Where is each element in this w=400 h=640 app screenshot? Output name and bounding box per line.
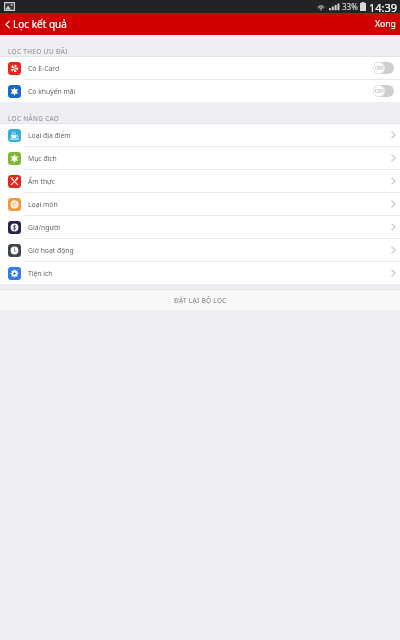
staticText: OFF: [375, 88, 384, 95]
staticText: Có E-Card: [28, 64, 60, 73]
button[interactable]: Ẩm thực: [0, 170, 400, 192]
button[interactable]: Có khuyến mãi: [0, 80, 400, 102]
staticText: LỌC THEO ƯU ĐÃI: [8, 47, 68, 56]
staticText: Giờ hoạt động: [28, 246, 74, 255]
staticText: 14:39: [369, 0, 398, 13]
button[interactable]: Loại món: [0, 193, 400, 215]
button[interactable]: Toggle off: [373, 85, 394, 97]
staticText: Xong: [375, 18, 396, 30]
staticText: Loại địa điểm: [28, 131, 71, 140]
staticText: LỌC NÂNG CAO: [8, 114, 60, 123]
staticText: Tiện ích: [28, 269, 53, 278]
staticText: Giá/người: [28, 223, 60, 232]
button[interactable]: Mục đích: [0, 147, 400, 169]
button[interactable]: Giá/người: [0, 216, 400, 238]
button[interactable]: Có E-Card: [0, 57, 400, 79]
staticText: 33%: [342, 1, 358, 12]
staticText: ĐẶT LẠI BỘ LỌC: [174, 296, 227, 305]
staticText: Lọc kết quả: [13, 17, 67, 31]
button[interactable]: Loại địa điểm: [0, 124, 400, 146]
button[interactable]: Giờ hoạt động: [0, 239, 400, 261]
staticText: Loại món: [28, 200, 58, 209]
button[interactable]: Toggle off: [373, 62, 394, 74]
button[interactable]: Lọc kết quả: [0, 14, 72, 34]
staticText: Ẩm thực: [28, 177, 55, 186]
staticText: Có khuyến mãi: [28, 87, 76, 96]
button[interactable]: Tiện ích: [0, 262, 400, 284]
button[interactable]: Xong: [369, 14, 400, 34]
staticText: OFF: [375, 65, 384, 72]
staticText: Mục đích: [28, 154, 57, 163]
button[interactable]: ĐẶT LẠI BỘ LỌC: [0, 290, 400, 310]
